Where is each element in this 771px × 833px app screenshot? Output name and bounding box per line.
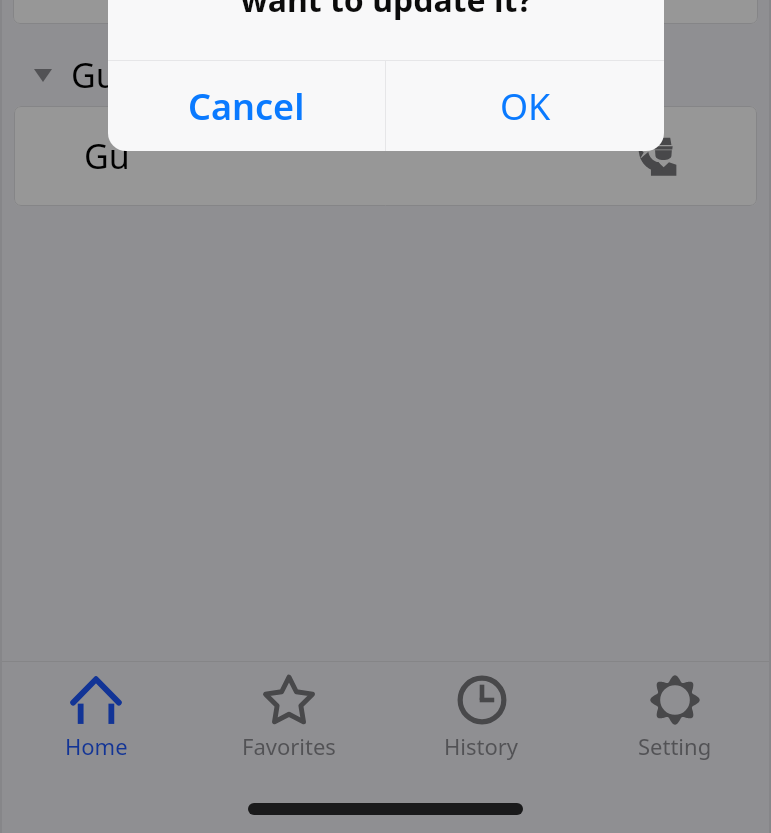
button[interactable]: History xyxy=(385,662,578,761)
button[interactable]: Home xyxy=(0,662,192,761)
button[interactable]: Call support xyxy=(627,126,687,186)
button[interactable]: Setting xyxy=(578,662,771,761)
staticText: Cancel xyxy=(188,82,305,131)
staticText: History xyxy=(444,731,519,761)
staticText: Gu xyxy=(71,52,117,98)
staticText: Home xyxy=(65,731,128,761)
button[interactable]: Gu xyxy=(0,51,771,99)
staticText: Favorites xyxy=(242,731,336,761)
button[interactable]: Gu xyxy=(14,106,757,206)
staticText: Data has been changed. Do you want to up… xyxy=(136,0,637,21)
button[interactable]: Cancel xyxy=(108,61,385,151)
staticText: Gu xyxy=(84,133,130,179)
button[interactable]: Favorites xyxy=(192,662,385,761)
button[interactable]: List item xyxy=(13,0,758,24)
button[interactable]: OK xyxy=(386,61,664,151)
staticText: Setting xyxy=(638,731,712,761)
staticText: OK xyxy=(500,82,551,131)
